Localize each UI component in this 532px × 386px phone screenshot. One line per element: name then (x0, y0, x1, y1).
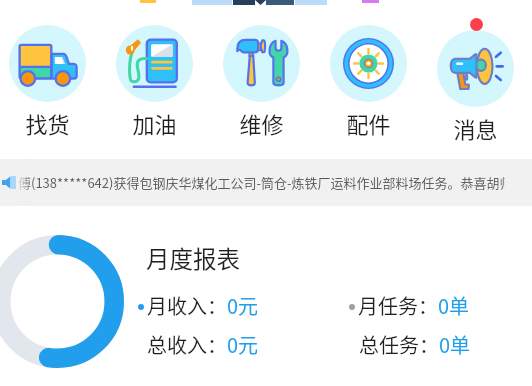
button[interactable]: Refuel (101, 18, 207, 142)
staticText: 傅(138*****642)获得包钢庆华煤化工公司-筒仓-炼铁厂运料作业部料场任… (18, 173, 526, 192)
staticText: 0元 (227, 291, 259, 320)
other: Announcement (2, 176, 16, 189)
staticText: 总任务： (359, 330, 439, 359)
staticText: 配件 (346, 107, 391, 139)
staticText: 找货 (25, 107, 70, 139)
staticText: 消息 (453, 112, 498, 144)
staticText: 维修 (239, 107, 284, 139)
button[interactable]: 傅(138*****642)获得包钢庆华煤化工公司-筒仓-炼铁厂运料作业部料场任… (0, 159, 532, 206)
staticText: 0单 (438, 291, 470, 320)
button[interactable]: Messages (422, 23, 528, 147)
other: Refuel (116, 25, 193, 102)
button[interactable]: 总收入： (147, 330, 259, 359)
staticText: 月收入： (147, 291, 227, 320)
button[interactable]: 总任务： (359, 330, 471, 359)
staticText: 加油 (132, 107, 177, 139)
other: Find cargo (9, 25, 86, 102)
button[interactable]: Parts (315, 18, 421, 142)
staticText: 月任务： (358, 291, 438, 320)
button[interactable]: 月任务： (349, 291, 470, 320)
other: Parts (330, 25, 407, 102)
staticText: 0元 (227, 330, 259, 359)
staticText: 总收入： (147, 330, 227, 359)
staticText: 月度报表 (146, 241, 240, 275)
button[interactable]: Repair (208, 18, 314, 142)
button[interactable]: Find cargo (0, 18, 100, 142)
button[interactable]: 月收入： (138, 291, 259, 320)
other: Messages (437, 30, 514, 107)
staticText: 0单 (439, 330, 471, 359)
other: Repair (223, 25, 300, 102)
